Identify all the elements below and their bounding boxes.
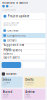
- staticText: last month: [25, 96, 31, 98]
- staticText: 3 unfinished: [25, 82, 34, 83]
- button[interactable]: Details: [2, 38, 46, 43]
- button[interactable]: Archive: [24, 89, 45, 100]
- button[interactable]: Inbox: [1, 77, 23, 88]
- staticText: today: [2, 84, 6, 86]
- staticText: Assistant · design tools: [2, 9, 16, 11]
- staticText: Suggested next steps: [3, 43, 24, 50]
- staticText: 12 new items: [2, 82, 10, 83]
- button[interactable]: Drafts: [24, 77, 45, 88]
- staticText: Shared: [2, 90, 12, 94]
- staticText: · 4 min: [10, 5, 13, 7]
- staticText: Recreate a screen: [2, 1, 28, 4]
- staticText: Drafts: [25, 78, 33, 81]
- button[interactable]: Components: [2, 33, 46, 38]
- staticText: 5 people: [2, 94, 8, 96]
- staticText: this week: [2, 96, 8, 98]
- staticText: Project update: [8, 14, 30, 18]
- staticText: 48 items: [25, 94, 30, 96]
- staticText: yesterday: [25, 84, 33, 86]
- button[interactable]: Shared: [1, 89, 23, 100]
- staticText: Here is a summary of the: [3, 22, 19, 24]
- button[interactable]: Continue: [2, 62, 21, 68]
- staticText: Components: [7, 34, 25, 37]
- staticText: Overview: [7, 29, 18, 32]
- staticText: Recent: [6, 72, 16, 76]
- staticText: latest layout changes.: [3, 24, 17, 26]
- button[interactable]: Overview: [2, 28, 46, 33]
- staticText: Archive: [25, 90, 35, 94]
- staticText: Review spacing tokens: [3, 49, 22, 56]
- staticText: Inbox: [2, 78, 10, 81]
- staticText: Details: [7, 39, 16, 42]
- staticText: Export assets: [3, 56, 19, 59]
- button[interactable]: Export assets: [2, 55, 46, 60]
- button[interactable]: Suggested next steps: [2, 44, 46, 49]
- button[interactable]: Review spacing tokens: [2, 50, 46, 54]
